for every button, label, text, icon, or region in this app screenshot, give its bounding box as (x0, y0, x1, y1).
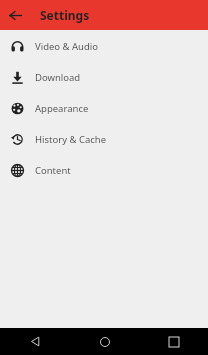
button[interactable]: Home (70, 328, 139, 355)
button[interactable]: Video & Audio (0, 31, 208, 62)
button[interactable]: Download (0, 62, 208, 93)
button[interactable]: Content (0, 155, 208, 186)
button[interactable]: Recent apps (139, 328, 208, 355)
button[interactable]: Back (0, 328, 70, 355)
staticText: Content (35, 164, 71, 177)
button[interactable]: Back (0, 0, 30, 30)
button[interactable]: History & Cache (0, 124, 208, 155)
button[interactable]: Appearance (0, 93, 208, 124)
staticText: Download (35, 71, 81, 84)
staticText: History & Cache (35, 133, 107, 146)
staticText: Video & Audio (35, 40, 98, 53)
staticText: Appearance (35, 102, 89, 115)
staticText: Settings (40, 7, 90, 23)
